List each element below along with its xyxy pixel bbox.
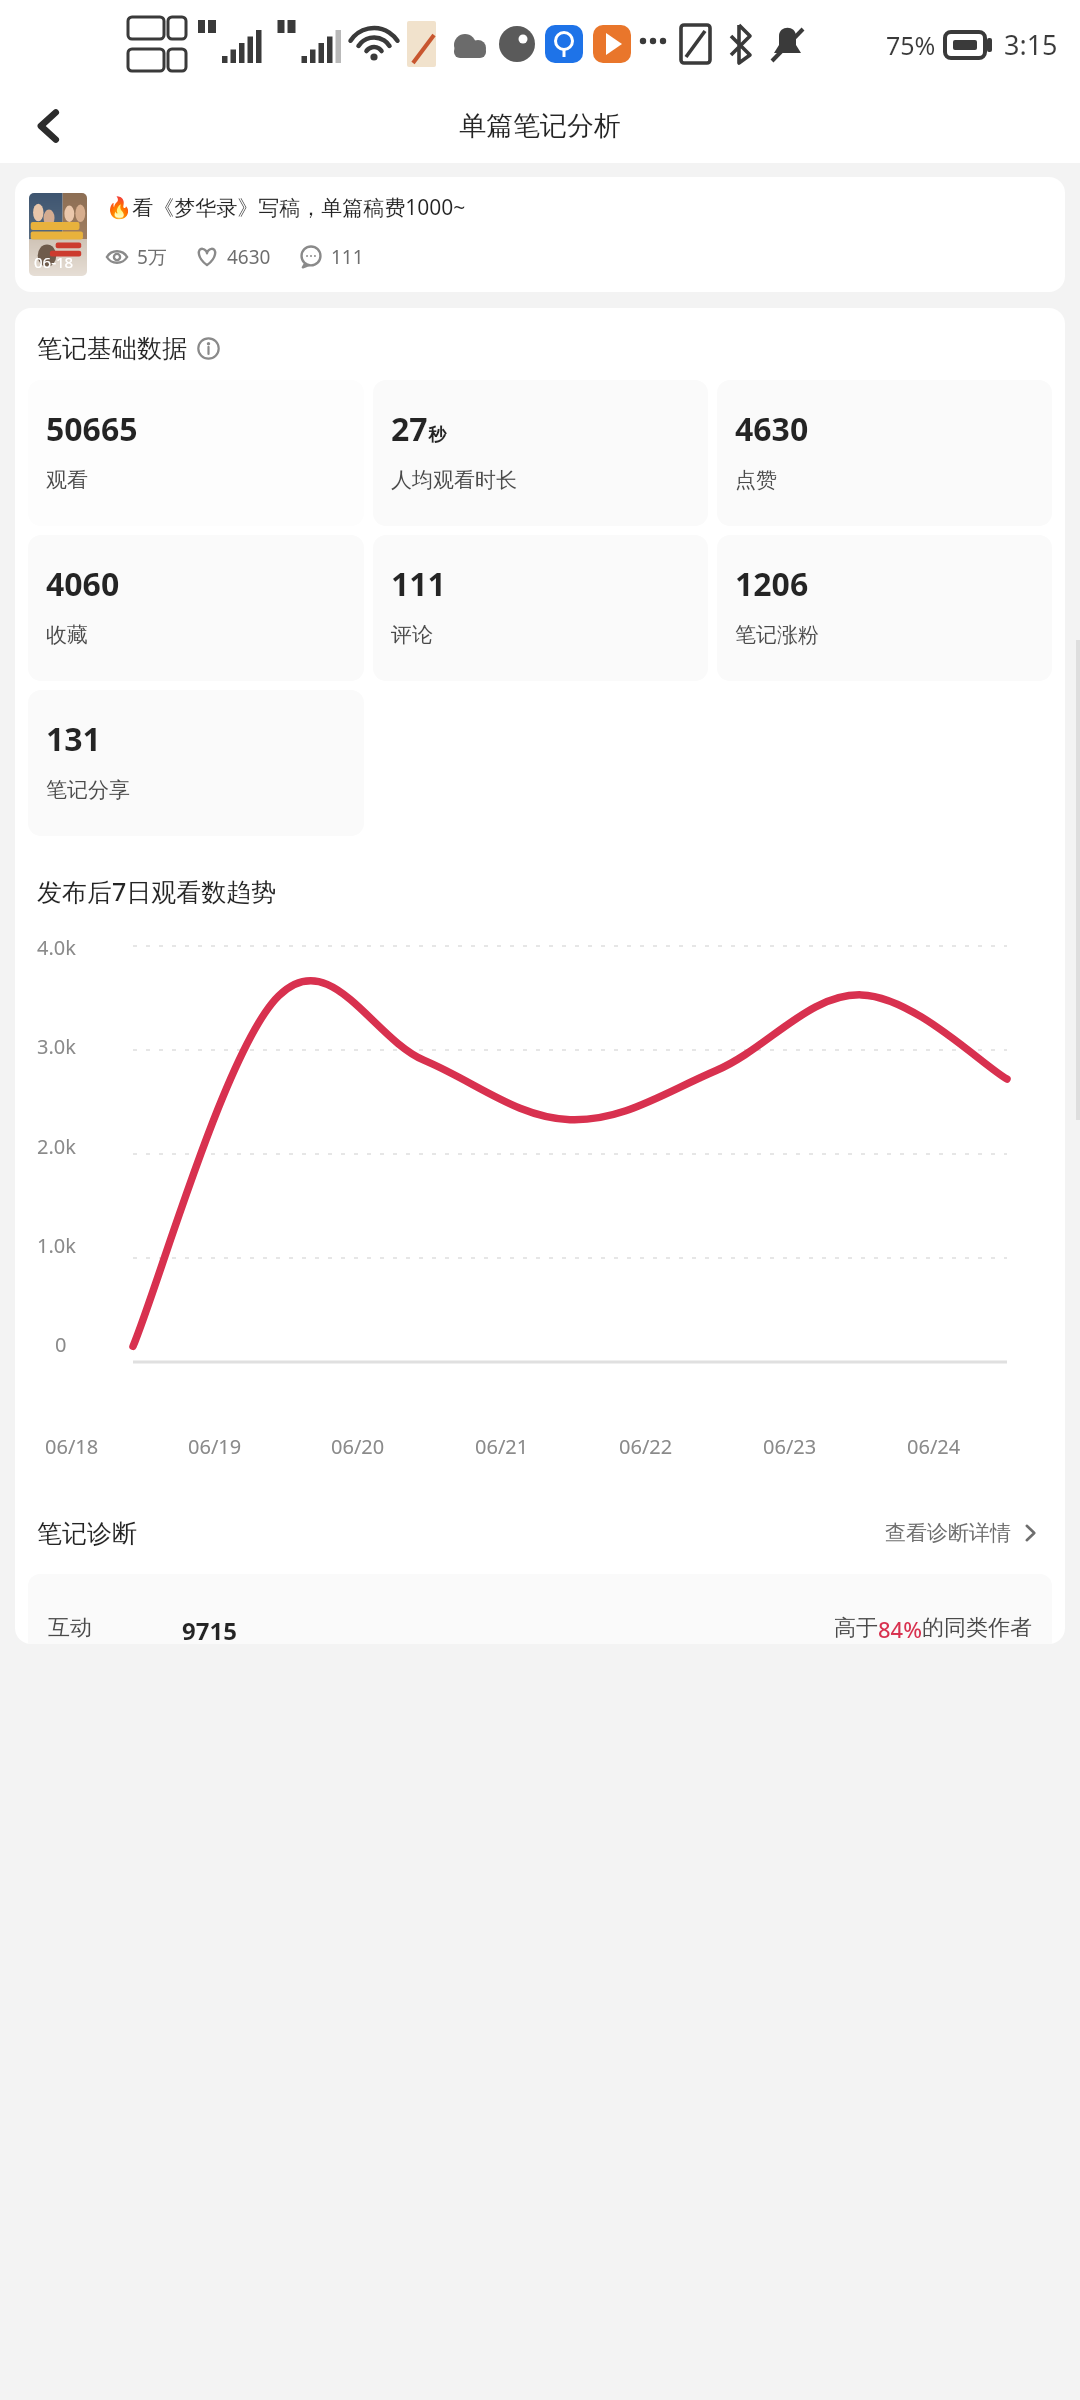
button[interactable]: 4060	[28, 535, 364, 681]
staticText: 06/20	[331, 1433, 385, 1460]
button[interactable]: 说明	[197, 337, 220, 360]
button[interactable]: Back	[20, 97, 78, 155]
staticText: 笔记分享	[46, 777, 130, 803]
staticText: 9715	[182, 1614, 237, 1644]
staticText: 50665	[46, 407, 138, 451]
button[interactable]: 131	[28, 690, 364, 836]
staticText: 2.0k	[37, 1133, 76, 1160]
staticText: 06/23	[763, 1433, 817, 1460]
staticText: 4630	[227, 244, 271, 270]
staticText: 点赞	[735, 467, 777, 493]
button[interactable]: 27	[373, 380, 708, 526]
staticText: 0	[55, 1331, 67, 1358]
staticText: 84%	[878, 1614, 922, 1644]
staticText: 27	[391, 407, 428, 451]
staticText: 75%	[886, 28, 936, 62]
staticText: 06/21	[475, 1433, 529, 1460]
button[interactable]: 1206	[717, 535, 1052, 681]
staticText: 4060	[46, 562, 120, 606]
staticText: 互动	[48, 1614, 92, 1642]
staticText: 1206	[735, 562, 809, 606]
staticText: 111	[391, 562, 446, 606]
staticText: 收藏	[46, 622, 88, 648]
button[interactable]: 互动	[28, 1574, 1052, 1644]
button[interactable]: 111	[373, 535, 708, 681]
staticText: 06/18	[45, 1433, 99, 1460]
staticText: 06/22	[619, 1433, 673, 1460]
staticText: 1.0k	[37, 1232, 76, 1259]
staticText: 观看	[46, 467, 88, 493]
staticText: 111	[331, 244, 364, 270]
staticText: 单篇笔记分析	[459, 109, 621, 143]
staticText: 4.0k	[37, 934, 76, 961]
staticText: 笔记基础数据	[37, 333, 187, 364]
staticText: 查看诊断详情	[885, 1520, 1011, 1546]
button[interactable]: 4630	[717, 380, 1052, 526]
button[interactable]: 查看诊断详情	[881, 1516, 1043, 1550]
staticText: 3:15	[1004, 26, 1058, 63]
staticText: 秒	[428, 424, 446, 447]
staticText: 5万	[137, 244, 167, 270]
staticText: 笔记涨粉	[735, 622, 819, 648]
button[interactable]: 06-18	[15, 177, 1065, 292]
staticText: 06/19	[188, 1433, 242, 1460]
staticText: 发布后7日观看数趋势	[37, 874, 277, 908]
staticText: 06/24	[907, 1433, 961, 1460]
staticText: 131	[46, 717, 101, 761]
staticText: 人均观看时长	[391, 467, 517, 493]
button[interactable]: 50665	[28, 380, 364, 526]
staticText: 评论	[391, 622, 433, 648]
staticText: 高于	[834, 1614, 878, 1642]
staticText: 4630	[735, 407, 809, 451]
staticText: 3.0k	[37, 1033, 76, 1060]
staticText: 的同类作者	[922, 1614, 1032, 1642]
staticText: 笔记诊断	[37, 1518, 137, 1549]
staticText: 🔥看《梦华录》写稿，单篇稿费1000~	[106, 193, 466, 222]
staticText: 06-18	[34, 252, 74, 272]
